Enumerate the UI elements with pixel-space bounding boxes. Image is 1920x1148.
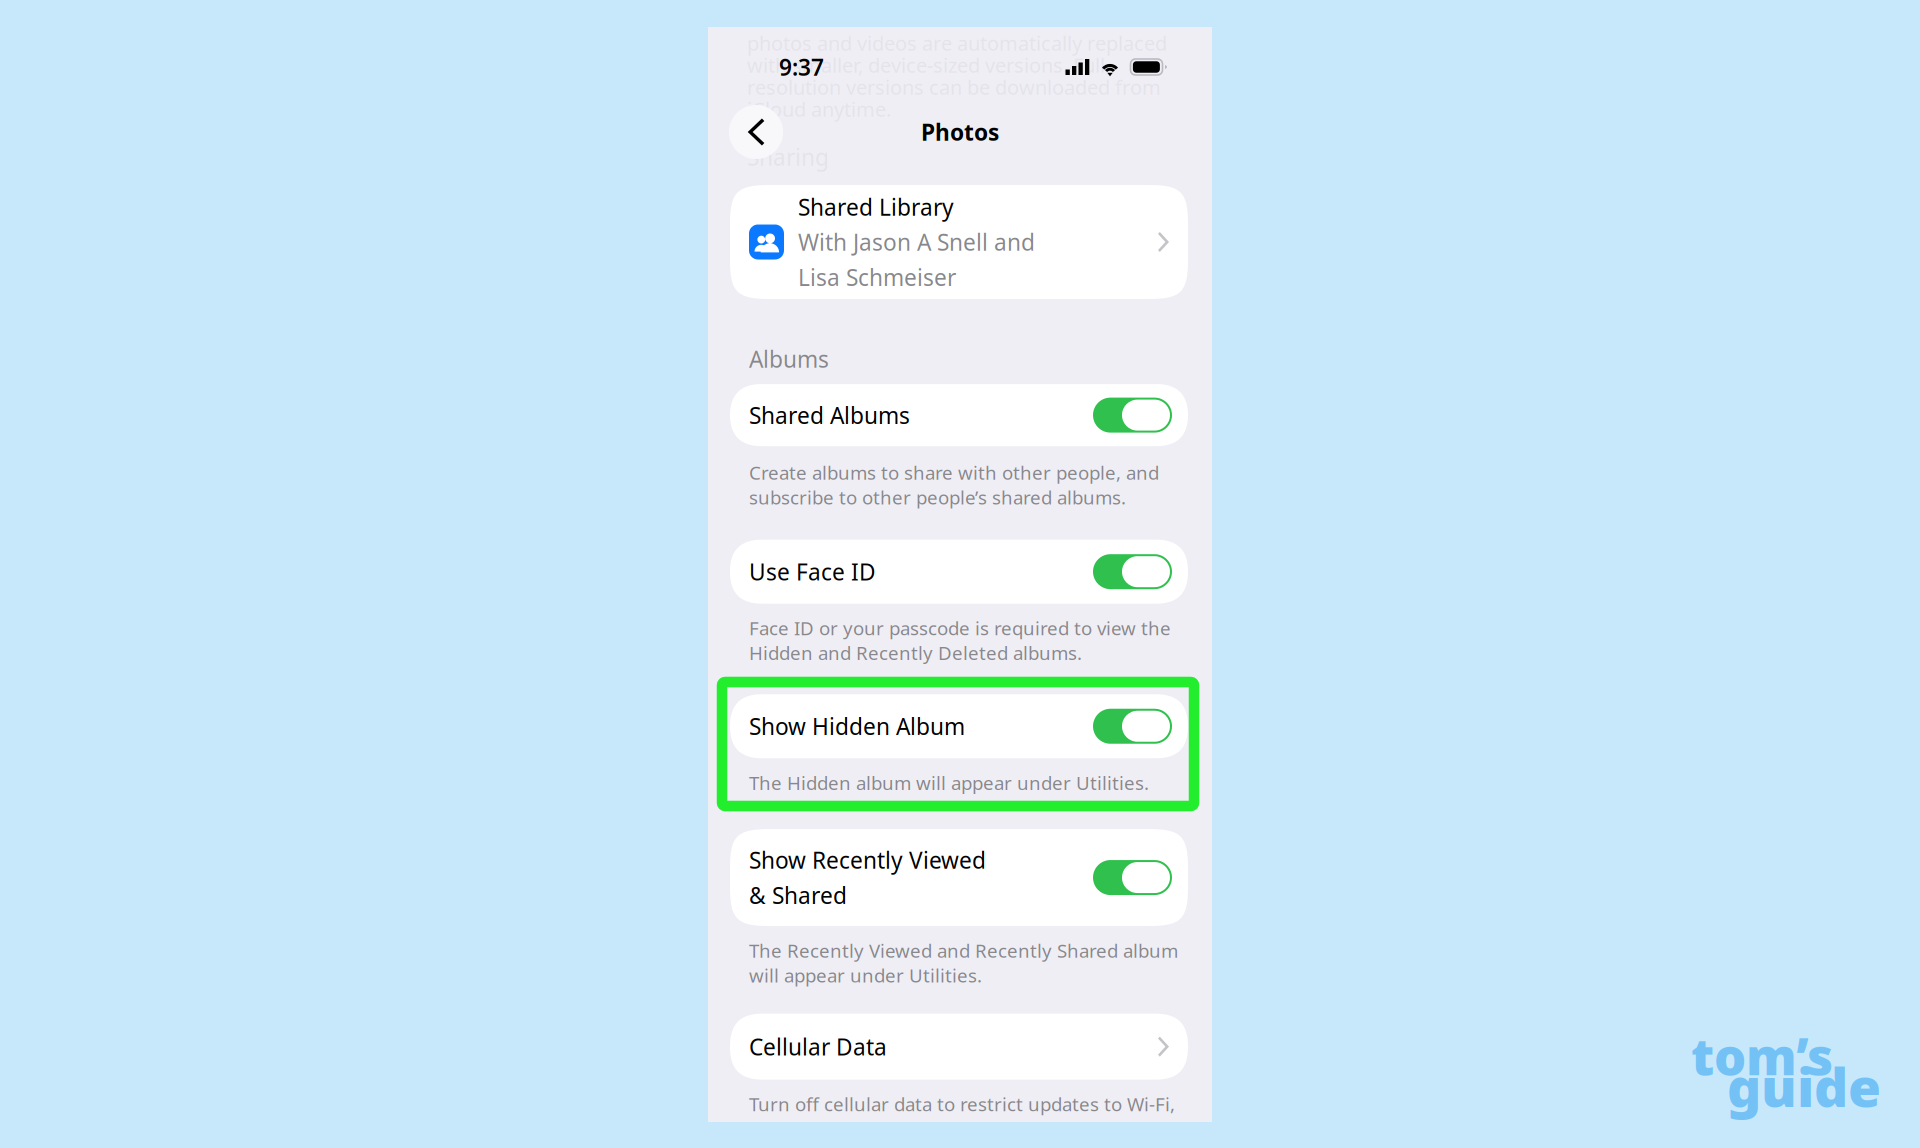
button[interactable]: Shared Albums: [730, 384, 1188, 446]
staticText: Face ID or your passcode is required to …: [749, 616, 1171, 665]
staticText: Sharing: [747, 142, 829, 172]
staticText: photos and videos are automatically repl…: [747, 30, 1167, 56]
button[interactable]: Cellular Data: [730, 1014, 1188, 1080]
button[interactable]: Back: [729, 105, 783, 159]
staticText: Show Hidden Album: [749, 711, 965, 741]
staticText: Cellular Data: [749, 1032, 887, 1062]
staticText: Show Recently Viewed: [749, 845, 986, 875]
button[interactable]: Use Face ID: [730, 540, 1188, 604]
staticText: Use Face ID: [749, 557, 876, 587]
staticText: Lisa Schmeiser: [798, 262, 956, 292]
staticText: Shared Library: [798, 192, 954, 222]
staticText: The Hidden album will appear under Utili…: [749, 770, 1149, 795]
staticText: with smaller, device-sized versions. Ful…: [747, 52, 1105, 78]
staticText: resolution versions can be downloaded fr…: [747, 74, 1161, 100]
staticText: Photos: [921, 117, 999, 147]
staticText: The Recently Viewed and Recently Shared …: [749, 938, 1178, 988]
staticText: guide: [1727, 1051, 1881, 1122]
staticText: Create albums to share with other people…: [749, 460, 1159, 510]
staticText: iCloud anytime.: [747, 96, 891, 122]
staticText: tom’s: [1691, 1022, 1833, 1089]
button[interactable]: Show Recently Viewed: [730, 829, 1188, 926]
staticText: Turn off cellular data to restrict updat…: [749, 1092, 1175, 1141]
button[interactable]: Show Hidden Album: [730, 694, 1188, 758]
staticText: Albums: [749, 344, 829, 374]
staticText: Shared Albums: [749, 400, 910, 430]
staticText: & Shared: [749, 880, 847, 910]
button[interactable]: Shared Library: [730, 185, 1188, 299]
staticText: With Jason A Snell and: [798, 227, 1035, 257]
staticText: 9:37: [779, 52, 824, 82]
